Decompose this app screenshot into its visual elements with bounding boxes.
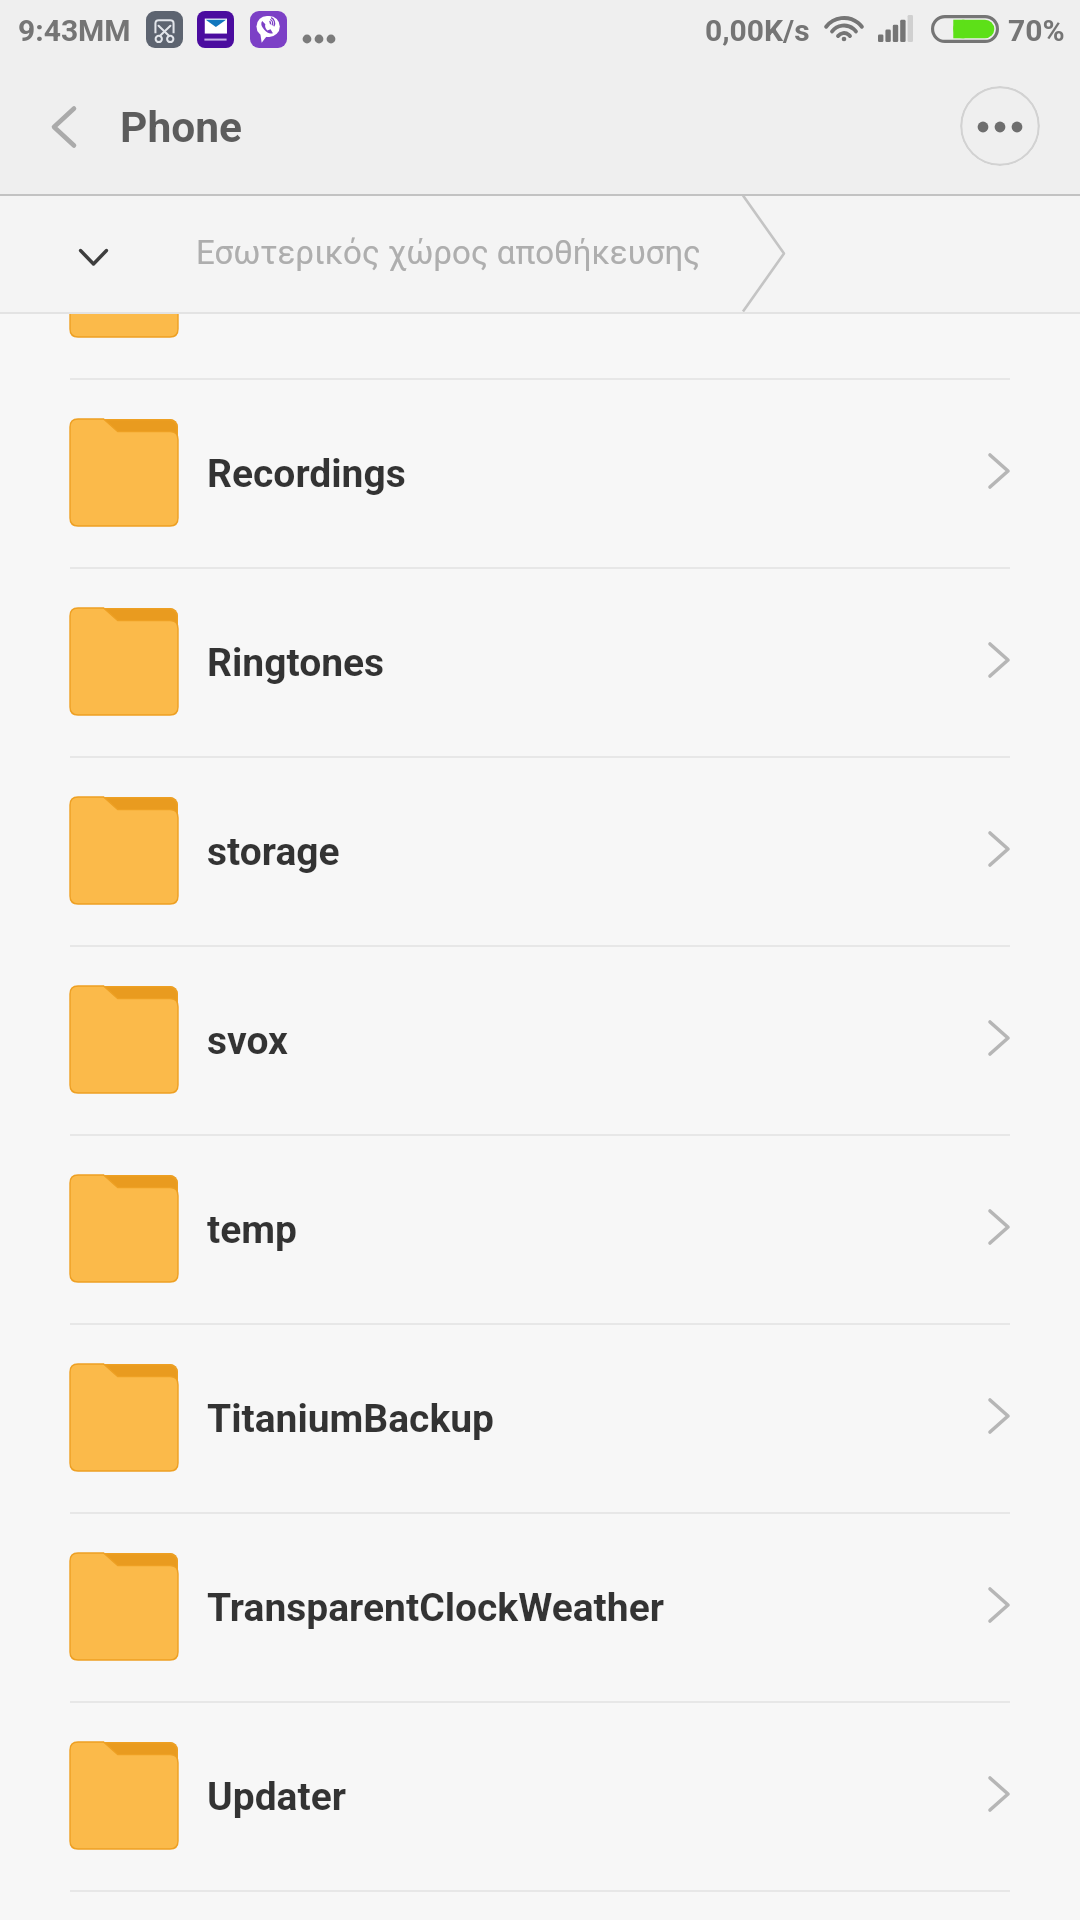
staticText: TitaniumBackup bbox=[207, 1396, 495, 1442]
staticText: Εσωτερικός χώρος αποθήκευσης bbox=[196, 233, 701, 272]
button[interactable]: Εσωτερικός χώρος αποθήκευσης bbox=[0, 194, 1080, 314]
button[interactable]: TransparentClockWeather bbox=[0, 1512, 1080, 1701]
staticText: Recordings bbox=[207, 451, 406, 497]
staticText: TransparentClockWeather bbox=[207, 1585, 664, 1631]
staticText: 0,00K/s bbox=[705, 13, 810, 48]
staticText: Podcasts bbox=[207, 262, 371, 308]
button[interactable]: More options bbox=[960, 86, 1040, 166]
button[interactable]: TitaniumBackup bbox=[0, 1323, 1080, 1512]
staticText: 70% bbox=[1008, 13, 1065, 48]
staticText: Ringtones bbox=[207, 640, 385, 686]
staticText: temp bbox=[207, 1207, 297, 1253]
button[interactable]: storage bbox=[0, 756, 1080, 945]
button[interactable]: Podcasts bbox=[0, 189, 1080, 378]
button[interactable]: Updater bbox=[0, 1701, 1080, 1890]
button[interactable]: svox bbox=[0, 945, 1080, 1134]
staticText: Updater bbox=[207, 1774, 347, 1820]
button[interactable]: temp bbox=[0, 1134, 1080, 1323]
staticText: Phone bbox=[120, 103, 242, 153]
staticText: svox bbox=[207, 1018, 288, 1064]
button[interactable]: Recordings bbox=[0, 378, 1080, 567]
button[interactable]: Pictures bbox=[0, 0, 1080, 189]
staticText: storage bbox=[207, 829, 340, 875]
button[interactable]: Back bbox=[24, 87, 104, 167]
staticText: 9:43MM bbox=[18, 13, 131, 48]
button[interactable]: Ringtones bbox=[0, 567, 1080, 756]
